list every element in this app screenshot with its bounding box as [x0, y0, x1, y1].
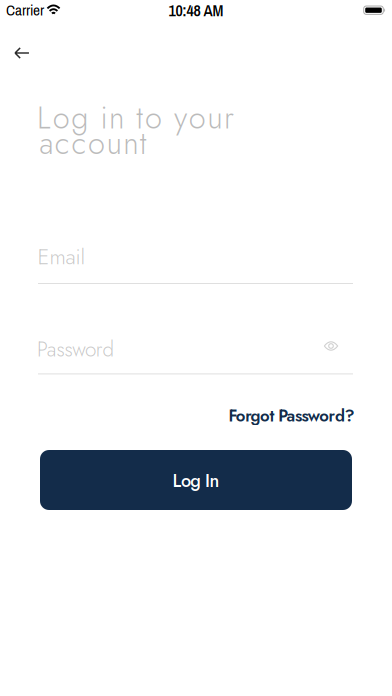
- staticText: Log In: [172, 468, 219, 494]
- button[interactable]: Show password: [319, 336, 343, 356]
- staticText: Forgot Password?: [228, 404, 354, 428]
- staticText: Log in to your: [37, 96, 234, 140]
- staticText: Carrier: [6, 0, 44, 20]
- staticText: 10:48 AM: [168, 0, 223, 21]
- staticText: Email: [37, 241, 85, 272]
- button[interactable]: Forgot Password?: [228, 404, 354, 428]
- staticText: Password: [37, 334, 115, 364]
- button[interactable]: Back: [7, 39, 37, 67]
- button[interactable]: Log In: [40, 450, 352, 510]
- staticText: account: [39, 121, 147, 165]
